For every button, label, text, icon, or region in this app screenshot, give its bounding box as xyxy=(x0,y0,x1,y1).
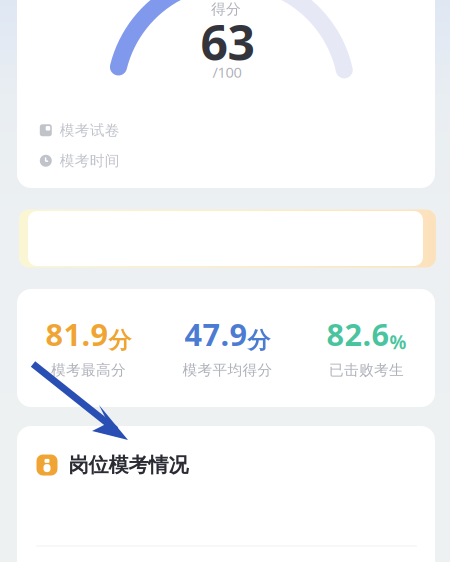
button[interactable]: 模考时间 xyxy=(40,150,430,172)
staticText: 47.9 xyxy=(184,314,247,354)
staticText: 81.9 xyxy=(45,314,108,354)
staticText: 模考最高分 xyxy=(51,361,126,379)
staticText: 得分 xyxy=(211,0,241,18)
button[interactable]: 模考试卷 xyxy=(40,119,430,141)
staticText: 模考试卷 xyxy=(60,121,120,139)
staticText: 模考时间 xyxy=(60,152,120,170)
button[interactable]: 岗位模考情况 xyxy=(36,452,426,478)
staticText: 分 xyxy=(108,326,131,354)
staticText: 已击败考生 xyxy=(329,361,404,379)
staticText: 岗位模考情况 xyxy=(68,453,188,477)
staticText: /100 xyxy=(212,62,241,82)
staticText: % xyxy=(389,330,406,354)
staticText: 82.6 xyxy=(326,314,389,354)
staticText: 模考平均得分 xyxy=(182,361,272,379)
staticText: 分 xyxy=(247,326,270,354)
staticText: 63 xyxy=(200,10,254,74)
